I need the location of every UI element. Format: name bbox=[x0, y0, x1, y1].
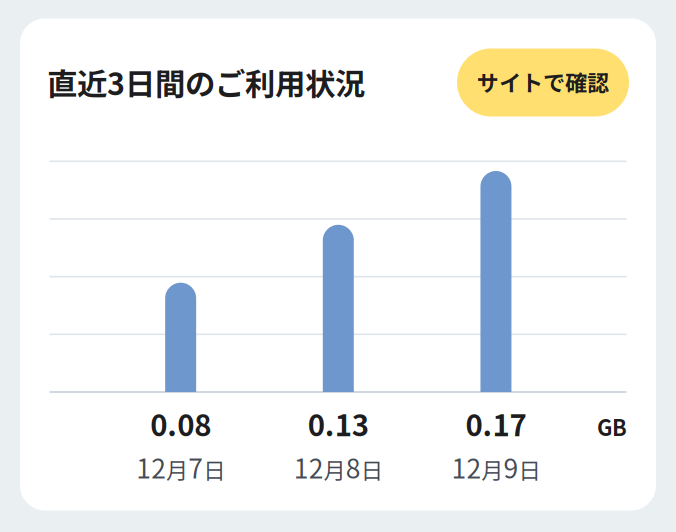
staticText: 0.17 bbox=[465, 402, 526, 445]
staticText: 12月7日 bbox=[136, 448, 225, 486]
staticText: サイトで確認 bbox=[477, 65, 609, 97]
button[interactable]: サイトで確認 bbox=[457, 48, 629, 116]
staticText: 0.08 bbox=[150, 402, 211, 445]
staticText: GB bbox=[597, 411, 627, 442]
staticText: 12月9日 bbox=[451, 448, 540, 486]
staticText: 12月8日 bbox=[294, 448, 383, 486]
staticText: 0.13 bbox=[308, 402, 369, 445]
staticText: 直近3日間のご利用状況 bbox=[47, 60, 365, 104]
